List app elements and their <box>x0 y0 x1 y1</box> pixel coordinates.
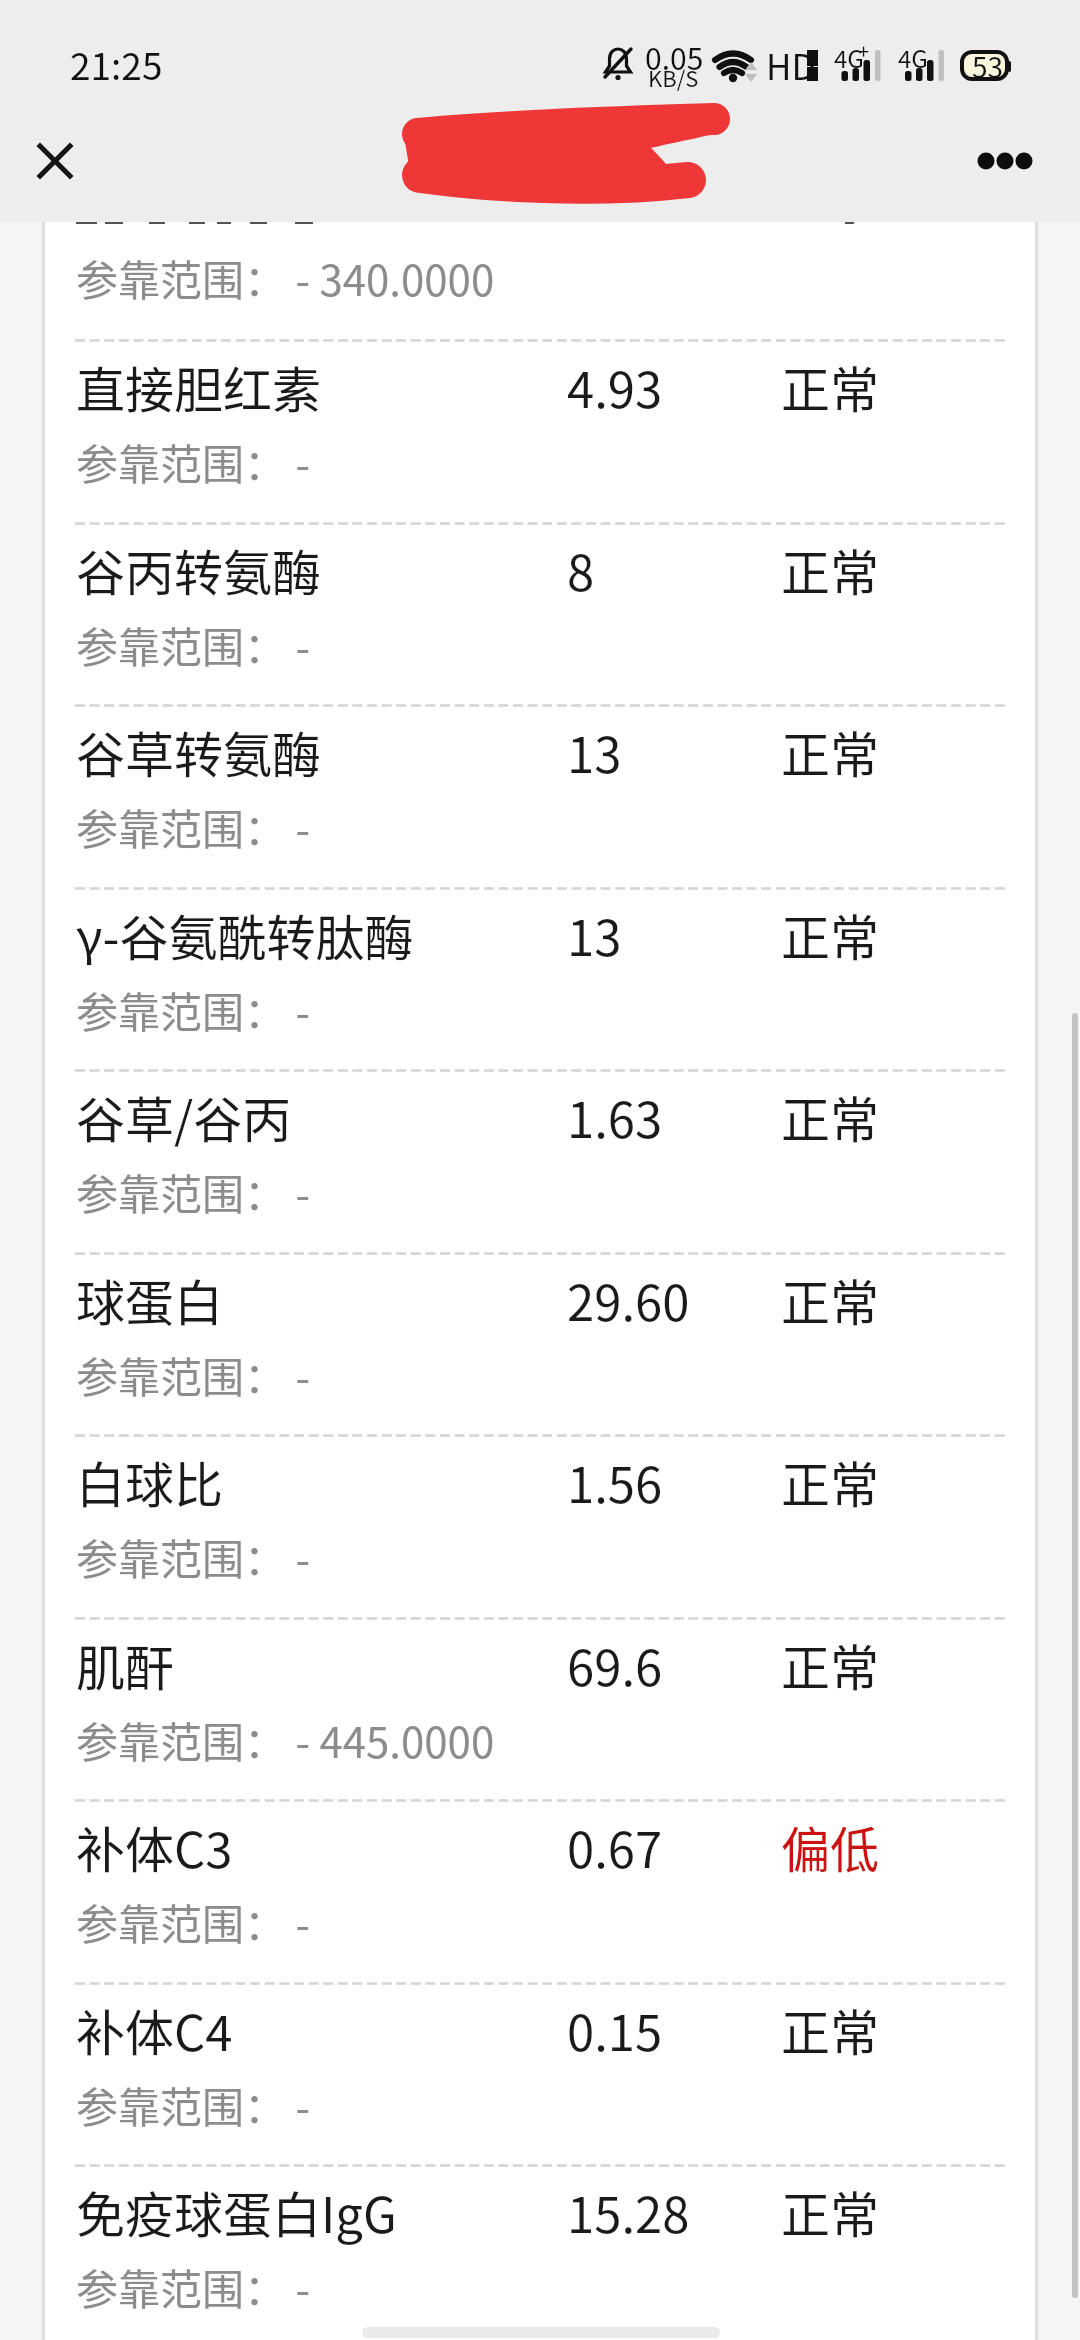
button[interactable]: 补体C3 <box>45 1802 1035 1982</box>
staticText: 0.15 <box>567 1994 663 2065</box>
staticText: 1.63 <box>567 1081 663 1152</box>
button[interactable]: 谷草转氨酶 <box>45 707 1035 887</box>
staticText: 白球比 <box>76 1446 224 1517</box>
staticText: 4G <box>898 40 928 75</box>
staticText: 13 <box>567 899 622 970</box>
staticText: 正常 <box>781 351 880 422</box>
staticText: 正常 <box>781 1264 880 1335</box>
staticText: 参靠范围： - <box>76 1161 310 1222</box>
staticText: 正常 <box>781 1081 880 1152</box>
button[interactable]: 谷草/谷丙 <box>45 1072 1035 1252</box>
staticText: 4.93 <box>567 351 663 422</box>
staticText: 正常 <box>781 1994 880 2065</box>
staticText: 球蛋白 <box>76 1264 224 1335</box>
staticText: 13 <box>567 716 622 787</box>
staticText: 免疫球蛋白IgG <box>76 2176 397 2247</box>
staticText: 8 <box>567 534 595 605</box>
staticText: 肌酐 <box>76 1629 175 1700</box>
staticText: 正常 <box>781 2176 880 2247</box>
staticText: 偏低 <box>781 1811 880 1882</box>
staticText: 参靠范围： - <box>76 2256 310 2317</box>
staticText: 正常 <box>781 1446 880 1517</box>
staticText: 参靠范围： - 340.0000 <box>76 247 495 308</box>
staticText: 21:25 <box>70 37 163 91</box>
button[interactable]: Close <box>21 127 89 195</box>
staticText: 0.05 <box>645 35 704 78</box>
staticText: 谷草/谷丙 <box>76 1081 292 1152</box>
staticText: 4G <box>834 40 864 75</box>
staticText: 参靠范围： - <box>76 431 310 492</box>
staticText: 0.67 <box>567 1811 663 1882</box>
button[interactable]: 谷丙转氨酶 <box>45 525 1035 704</box>
button[interactable]: 白球比 <box>45 1437 1035 1617</box>
staticText: 参靠范围： - <box>76 796 310 857</box>
staticText: 53 <box>972 46 1004 87</box>
button[interactable]: 补体C4 <box>45 1985 1035 2164</box>
staticText: HD <box>766 39 816 90</box>
staticText: 正常 <box>781 1629 880 1700</box>
staticText: 参靠范围： - <box>76 2074 310 2135</box>
button[interactable]: More options <box>970 126 1040 196</box>
staticText: 69.6 <box>567 1629 663 1700</box>
staticText: 参靠范围： - <box>76 979 310 1040</box>
staticText: 1.56 <box>567 1446 663 1517</box>
staticText: 正常 <box>781 899 880 970</box>
staticText: 参靠范围： - <box>76 1344 310 1405</box>
button[interactable]: 肌酐 <box>45 1620 1035 1799</box>
staticText: KB/S <box>648 61 699 93</box>
staticText: 补体C3 <box>76 1811 233 1882</box>
button[interactable]: 球蛋白 <box>45 1255 1035 1434</box>
staticText: 29.60 <box>567 1264 690 1335</box>
staticText: 正常 <box>781 534 880 605</box>
staticText: 补体C4 <box>76 1994 233 2065</box>
staticText: 谷丙转氨酶 <box>76 534 322 605</box>
staticText: 参靠范围： - <box>76 1891 310 1952</box>
staticText: 谷草转氨酶 <box>76 716 322 787</box>
button[interactable]: 免疫球蛋白IgG <box>45 2167 1035 2340</box>
staticText: 15.28 <box>567 2176 690 2247</box>
button[interactable]: γ-谷氨酰转肽酶 <box>45 890 1035 1069</box>
staticText: + <box>858 36 870 65</box>
button[interactable]: 直接胆红素 <box>45 342 1035 522</box>
staticText: 直接胆红素 <box>76 351 322 422</box>
staticText: 参靠范围： - <box>76 614 310 675</box>
staticText: 参靠范围： - <box>76 1526 310 1587</box>
staticText: 正常 <box>781 716 880 787</box>
staticText: γ-谷氨酰转肽酶 <box>76 899 414 970</box>
staticText: 参靠范围： - 445.0000 <box>76 1709 495 1770</box>
